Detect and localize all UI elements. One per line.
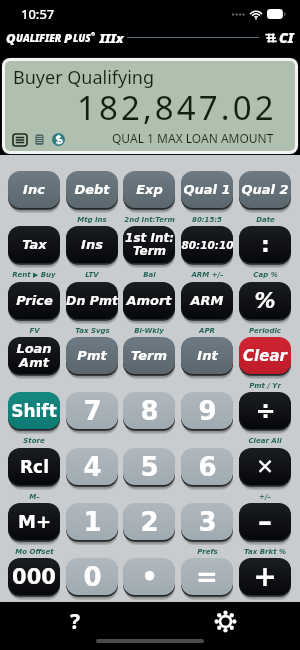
staticText: = — [196, 562, 218, 592]
staticText: ARM — [190, 293, 224, 308]
staticText: Cap % — [253, 271, 278, 279]
staticText: Bal — [143, 271, 156, 279]
staticText: – — [258, 505, 272, 538]
staticText: 2nd Int:Term — [124, 216, 175, 224]
staticText: Prefs — [197, 548, 218, 556]
button[interactable]: Dn Pmt — [66, 282, 118, 319]
button[interactable]: 4 — [66, 448, 118, 485]
button[interactable]: + — [239, 558, 291, 595]
staticText: Mtg Ins — [77, 216, 107, 224]
button[interactable]: Amort — [123, 282, 175, 319]
staticText: Periodic — [249, 327, 281, 335]
staticText: ? — [70, 607, 81, 636]
staticText: LUS — [73, 31, 91, 45]
staticText: FV — [29, 327, 40, 335]
button[interactable]: Price — [8, 282, 60, 319]
staticText: +/– — [259, 493, 271, 501]
button[interactable]: Term — [123, 337, 175, 374]
button[interactable]: 3 — [181, 503, 233, 540]
staticText: APR — [199, 327, 215, 335]
button[interactable]: Pmt — [66, 337, 118, 374]
button[interactable]: Qual 1 — [181, 171, 233, 208]
button[interactable]: Help — [0, 602, 150, 640]
button[interactable]: Rcl — [8, 448, 60, 485]
staticText: Rent ▶ Buy — [12, 271, 56, 279]
staticText: Pmt / Yr — [249, 382, 281, 390]
button[interactable]: Shift — [8, 392, 60, 429]
staticText: 5 — [140, 452, 159, 482]
staticText: Price — [16, 293, 53, 308]
staticText: 8 — [140, 396, 159, 426]
button[interactable]: ÷ — [239, 392, 291, 429]
staticText: 3 — [198, 507, 217, 537]
button[interactable]: Tax — [8, 226, 60, 263]
staticText: P — [64, 29, 73, 47]
button[interactable]: Int — [181, 337, 233, 374]
staticText: CI — [279, 28, 294, 47]
staticText: 000 — [12, 565, 56, 589]
staticText: UALIFIER — [16, 31, 64, 45]
staticText: QUAL 1 MAX LOAN AMOUNT — [112, 130, 274, 146]
staticText: • — [141, 562, 158, 592]
staticText: 6 — [198, 452, 217, 482]
staticText: Rcl — [20, 457, 49, 477]
staticText: Exp — [136, 182, 163, 197]
button[interactable]: 5 — [123, 448, 175, 485]
staticText: ® — [91, 31, 96, 38]
staticText: 80:10:10 — [181, 239, 233, 251]
staticText: 2 — [140, 507, 159, 537]
staticText: Q — [6, 29, 16, 47]
staticText: 10:57 — [21, 5, 55, 23]
staticText: Mo Offset — [15, 548, 54, 556]
button[interactable]: M+ — [8, 503, 60, 540]
button[interactable]: 000 — [8, 558, 60, 595]
staticText: % — [254, 289, 276, 313]
button[interactable]: 1 — [66, 503, 118, 540]
button[interactable]: : — [239, 226, 291, 263]
button[interactable]: 80:10:10 — [181, 226, 233, 263]
staticText: IIIx — [96, 29, 124, 47]
staticText: 4 — [83, 452, 102, 482]
button[interactable]: 7 — [66, 392, 118, 429]
button[interactable]: • — [123, 558, 175, 595]
staticText: Store — [23, 437, 45, 445]
staticText: 0 — [83, 562, 102, 592]
staticText: Dn Pmt — [66, 293, 118, 308]
button[interactable]: Qual 2 — [239, 171, 291, 208]
button[interactable]: 2 — [123, 503, 175, 540]
button[interactable]: – — [239, 503, 291, 540]
button[interactable]: 6 — [181, 448, 233, 485]
button[interactable]: Debt — [66, 171, 118, 208]
staticText: 182,847.02 — [77, 85, 277, 130]
button[interactable]: Exp — [123, 171, 175, 208]
staticText: 9 — [198, 396, 217, 426]
staticText: Ins — [81, 237, 103, 252]
staticText: Int — [197, 348, 218, 363]
button[interactable]: = — [181, 558, 233, 595]
button[interactable]: Settings — [150, 602, 300, 640]
button[interactable]: 1st Int: Term — [123, 226, 175, 263]
button[interactable]: 0 — [66, 558, 118, 595]
button[interactable]: Loan Amt — [8, 337, 60, 374]
button[interactable]: ARM — [181, 282, 233, 319]
button[interactable]: Clear — [239, 337, 291, 374]
staticText: ARM +/– — [191, 271, 224, 279]
staticText: ÷ — [255, 397, 276, 425]
staticText: ✕ — [256, 455, 274, 479]
button[interactable]: Inc — [8, 171, 60, 208]
staticText: Clear — [243, 347, 287, 364]
button[interactable]: ✕ — [239, 448, 291, 485]
button[interactable]: % — [239, 282, 291, 319]
staticText: Buyer Qualifying — [13, 65, 155, 90]
staticText: Inc — [23, 182, 45, 197]
staticText: Term — [131, 348, 167, 363]
staticText: Tax Brkt % — [244, 548, 286, 556]
staticText: Debt — [74, 182, 110, 197]
button[interactable]: 8 — [123, 392, 175, 429]
button[interactable]: 9 — [181, 392, 233, 429]
staticText: M– — [29, 493, 40, 501]
button[interactable]: Ins — [66, 226, 118, 263]
staticText: Clear All — [248, 437, 282, 445]
staticText: Shift — [11, 401, 57, 421]
staticText: Bi-Wkly — [134, 327, 164, 335]
